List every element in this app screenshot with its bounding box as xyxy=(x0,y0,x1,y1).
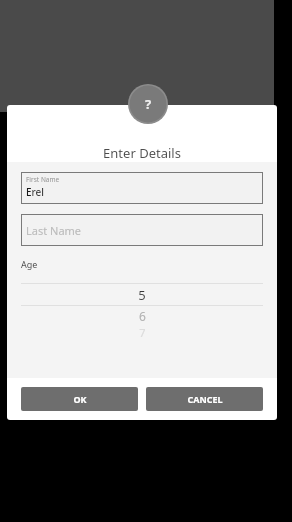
staticText: CANCEL xyxy=(187,393,223,405)
staticText: ? xyxy=(145,95,152,113)
button[interactable]: OK xyxy=(21,387,138,411)
staticText: 5 xyxy=(138,286,146,304)
staticText: Last Name xyxy=(26,223,82,238)
button[interactable]: Help xyxy=(128,84,168,124)
staticText: Age xyxy=(21,258,38,270)
button[interactable]: 5 xyxy=(21,284,263,305)
button[interactable]: Last Name xyxy=(21,214,263,246)
staticText: First Name xyxy=(26,175,60,184)
staticText: Enter Details xyxy=(103,144,181,162)
staticText: Erel xyxy=(26,185,45,199)
staticText: OK xyxy=(73,393,87,405)
staticText: 7 xyxy=(139,325,146,340)
staticText: 6 xyxy=(139,308,146,324)
button[interactable]: CANCEL xyxy=(146,387,263,411)
button[interactable]: First Name xyxy=(21,172,263,204)
